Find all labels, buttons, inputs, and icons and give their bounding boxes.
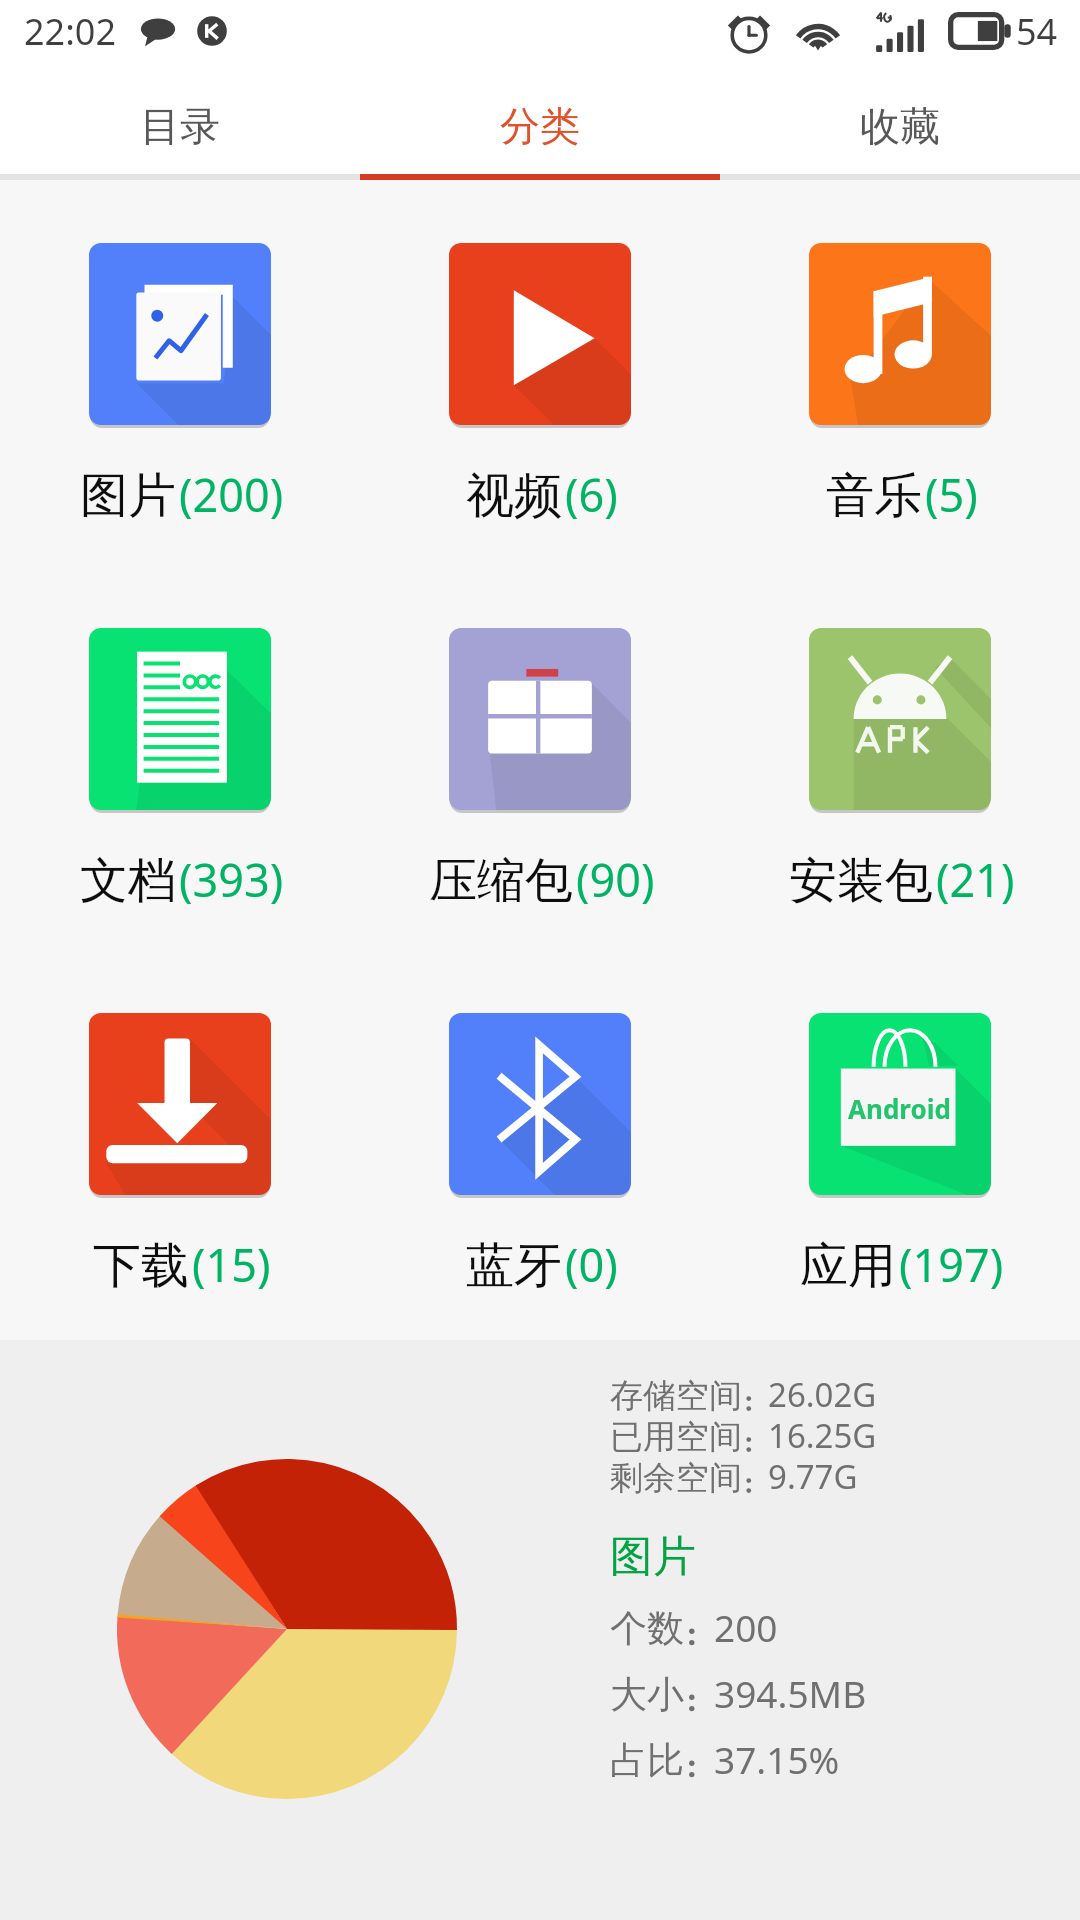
other: Storage usage pie chart — [117, 1459, 457, 1799]
other: 4G signal — [868, 10, 926, 52]
button[interactable]: 视频 — [360, 186, 720, 571]
staticText: 存储空间 — [610, 1375, 742, 1417]
staticText: (21) — [936, 849, 1015, 910]
staticText: 目录 — [140, 101, 220, 151]
staticText: 54 — [1016, 7, 1058, 56]
staticText: 下载 — [93, 1236, 189, 1296]
staticText: (6) — [565, 464, 618, 525]
staticText: 视频 — [466, 466, 562, 526]
other: Battery 54 percent — [948, 12, 1012, 50]
other: Alarm — [728, 10, 770, 52]
button[interactable]: 文档 — [0, 571, 360, 956]
staticText: 安装包 — [789, 851, 933, 911]
staticText: 个数 — [610, 1605, 684, 1652]
staticText: 剩余空间 — [610, 1457, 742, 1499]
button[interactable]: 压缩包 — [360, 571, 720, 956]
staticText: 收藏 — [860, 101, 940, 151]
staticText: 应用 — [800, 1236, 896, 1296]
button[interactable]: 收藏 — [720, 62, 1080, 174]
button[interactable]: 蓝牙 — [360, 956, 720, 1341]
staticText: (5) — [925, 464, 978, 525]
staticText: 394.5MB — [714, 1668, 867, 1718]
staticText: 16.25G — [768, 1413, 877, 1458]
staticText: (0) — [565, 1234, 618, 1295]
staticText: 图片 — [610, 1530, 696, 1584]
button[interactable]: 分类 — [360, 62, 720, 174]
button[interactable]: Android — [720, 956, 1080, 1341]
staticText: 已用空间 — [610, 1416, 742, 1458]
staticText: Android — [848, 1091, 951, 1126]
staticText: 200 — [714, 1602, 778, 1652]
staticText: (197) — [899, 1234, 1004, 1295]
staticText: (393) — [179, 849, 284, 910]
staticText: 分类 — [500, 101, 580, 151]
staticText: 37.15% — [714, 1734, 840, 1784]
staticText: 大小 — [610, 1671, 684, 1718]
staticText: 音乐 — [826, 466, 922, 526]
staticText: (90) — [576, 849, 655, 910]
other: Kika — [193, 12, 231, 50]
staticText: 文档 — [80, 851, 176, 911]
staticText: 压缩包 — [429, 851, 573, 911]
button[interactable]: 音乐 — [720, 186, 1080, 571]
staticText: 蓝牙 — [466, 1236, 562, 1296]
button[interactable]: 目录 — [0, 62, 360, 174]
staticText: 26.02G — [768, 1372, 877, 1417]
staticText: 图片 — [80, 466, 176, 526]
staticText: (200) — [179, 464, 284, 525]
staticText: 占比 — [610, 1737, 684, 1784]
other: Wi-Fi — [794, 12, 842, 50]
button[interactable]: 图片 — [0, 186, 360, 571]
button[interactable]: 安装包 — [720, 571, 1080, 956]
button[interactable]: 下载 — [0, 956, 360, 1341]
staticText: 22:02 — [24, 7, 117, 56]
other: Messages — [139, 12, 177, 50]
staticText: 9.77G — [768, 1454, 858, 1499]
staticText: (15) — [192, 1234, 271, 1295]
